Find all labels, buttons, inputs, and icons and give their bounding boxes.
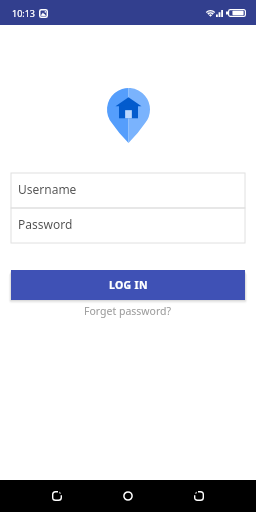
button[interactable]: Back bbox=[41, 480, 73, 512]
staticText: LOG IN bbox=[109, 278, 148, 292]
button[interactable]: Recents bbox=[183, 480, 215, 512]
button[interactable]: Forget password? bbox=[78, 303, 178, 319]
button[interactable]: Password bbox=[11, 208, 245, 243]
button[interactable]: LOG IN bbox=[11, 270, 245, 300]
staticText: Forget password? bbox=[84, 304, 172, 318]
staticText: Password bbox=[18, 216, 73, 232]
staticText: Username bbox=[18, 181, 77, 197]
button[interactable]: Username bbox=[11, 173, 245, 208]
button[interactable]: Home bbox=[112, 480, 144, 512]
staticText: 10:13 bbox=[12, 7, 36, 19]
